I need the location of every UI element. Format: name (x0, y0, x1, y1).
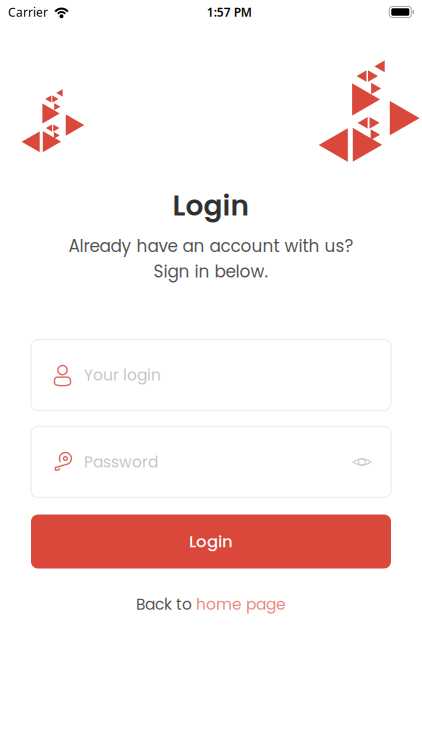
button[interactable]: Your login (31, 339, 391, 410)
staticText: Already have an account with us? (68, 234, 353, 258)
staticText: Password (84, 451, 158, 473)
staticText: Back to (136, 593, 196, 615)
staticText: Carrier (8, 4, 48, 20)
staticText: Login (172, 186, 249, 225)
button[interactable]: Back to (136, 593, 286, 615)
staticText: home page (196, 593, 286, 615)
button[interactable]: Login (31, 514, 391, 568)
staticText: Your login (84, 364, 161, 386)
staticText: Sign in below. (153, 260, 268, 284)
button[interactable]: Password (31, 426, 391, 497)
staticText: 1:57 PM (207, 4, 252, 20)
staticText: Login (189, 530, 233, 553)
